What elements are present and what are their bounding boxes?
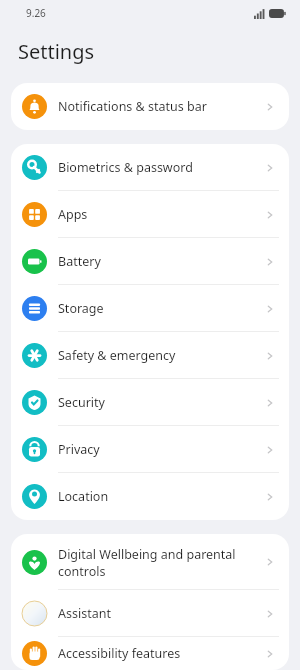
- button[interactable]: Notifications & status bar: [11, 83, 289, 130]
- button[interactable]: Location: [11, 473, 289, 520]
- button[interactable]: Safety & emergency: [11, 332, 289, 379]
- staticText: Privacy: [58, 441, 255, 458]
- button[interactable]: Assistant: [11, 590, 289, 637]
- staticText: Storage: [58, 300, 255, 317]
- staticText: Assistant: [58, 605, 255, 622]
- button[interactable]: Security: [11, 379, 289, 426]
- staticText: Digital Wellbeing and parental controls: [58, 546, 255, 579]
- button[interactable]: Battery: [11, 238, 289, 285]
- staticText: Accessibility features: [58, 645, 255, 662]
- button[interactable]: Apps: [11, 191, 289, 238]
- staticText: Notifications & status bar: [58, 98, 255, 115]
- button[interactable]: Accessibility features: [11, 637, 289, 670]
- staticText: Apps: [58, 206, 255, 223]
- button[interactable]: Privacy: [11, 426, 289, 473]
- staticText: 9.26: [26, 6, 46, 20]
- button[interactable]: Digital Wellbeing and parental controls: [11, 534, 289, 590]
- staticText: Biometrics & password: [58, 159, 255, 176]
- staticText: Security: [58, 394, 255, 411]
- staticText: Location: [58, 488, 255, 505]
- staticText: Battery: [58, 253, 255, 270]
- staticText: Safety & emergency: [58, 347, 255, 364]
- button[interactable]: Biometrics & password: [11, 144, 289, 191]
- staticText: Settings: [18, 38, 95, 65]
- button[interactable]: Storage: [11, 285, 289, 332]
